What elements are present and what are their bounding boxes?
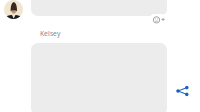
staticText: Kelsey [40,29,60,38]
button[interactable]: Add reaction [149,14,167,25]
button[interactable]: Share [176,85,189,97]
